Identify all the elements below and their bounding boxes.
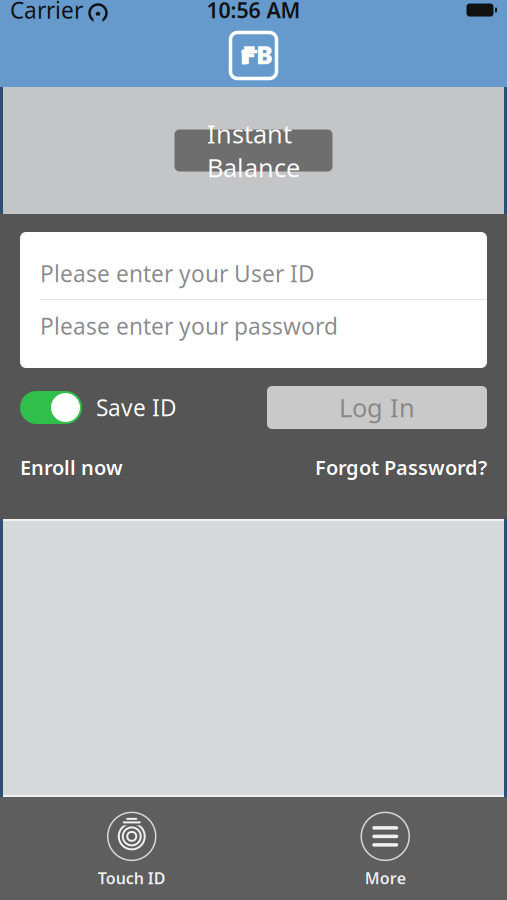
button[interactable]: Touch ID [98, 812, 166, 889]
staticText: Save ID [96, 392, 177, 422]
staticText: Please enter your User ID [40, 258, 315, 288]
button[interactable]: Save ID [20, 391, 177, 424]
staticText: 10:56 AM [206, 0, 300, 24]
staticText: Log In [339, 391, 415, 424]
staticText: Forgot Password? [315, 454, 487, 481]
button[interactable]: Forgot Password? [315, 454, 487, 481]
button[interactable]: Enroll now [20, 454, 123, 481]
button[interactable]: More [361, 812, 409, 889]
staticText: Carrier [10, 0, 83, 25]
staticText: Enroll now [20, 454, 123, 481]
button[interactable]: Log In [267, 386, 487, 429]
staticText: FB [242, 38, 273, 71]
staticText: Please enter your password [40, 311, 338, 341]
button[interactable]: Instant Balance [174, 129, 332, 171]
staticText: More [365, 867, 406, 889]
staticText: Touch ID [98, 867, 166, 889]
staticText: Instant Balance [207, 117, 300, 184]
